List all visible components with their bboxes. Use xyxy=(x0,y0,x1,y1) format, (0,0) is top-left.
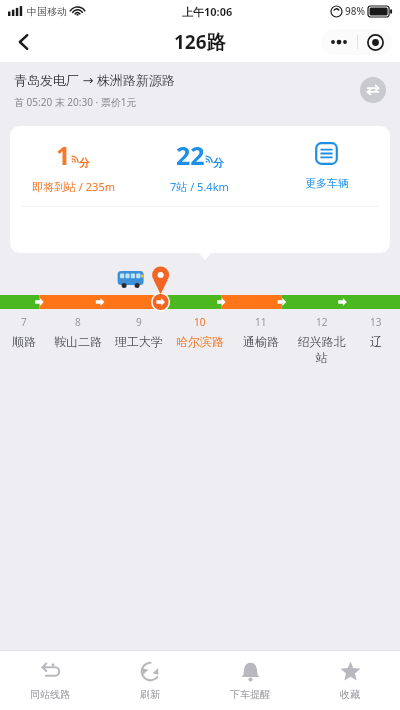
staticText: 中国移动 xyxy=(27,5,67,18)
staticText: 13 xyxy=(370,315,382,329)
staticText: 7 xyxy=(21,315,27,329)
button[interactable]: 刷新 xyxy=(100,651,200,710)
staticText: 22 xyxy=(176,138,205,172)
staticText: 9 xyxy=(136,315,142,329)
staticText: 更多车辆 xyxy=(305,176,349,190)
staticText: 12 xyxy=(316,315,328,329)
staticText: 1 xyxy=(56,138,71,172)
staticText: 同站线路 xyxy=(30,688,70,701)
staticText: 绍兴路北站 xyxy=(293,334,350,366)
staticText: 分 xyxy=(79,156,90,170)
staticText: 126路 xyxy=(174,29,226,55)
button[interactable]: 9 xyxy=(108,315,169,349)
button[interactable]: 下车提醒 xyxy=(200,651,300,710)
staticText: 11 xyxy=(255,315,267,329)
staticText: 10 xyxy=(194,315,206,329)
button[interactable]: 8 xyxy=(47,315,108,349)
button[interactable]: 更多车辆 xyxy=(263,142,390,190)
staticText: 顺路 xyxy=(12,334,36,349)
button[interactable]: 10 xyxy=(169,315,230,349)
button[interactable]: Reverse direction xyxy=(360,77,386,103)
staticText: 辽 xyxy=(370,334,382,349)
staticText: 通榆路 xyxy=(243,334,279,349)
staticText: 7站 / 5.4km xyxy=(170,179,229,194)
button[interactable]: Back xyxy=(6,24,42,60)
button[interactable]: More options xyxy=(321,29,357,55)
staticText: 理工大学 xyxy=(115,334,163,349)
button[interactable]: Locate xyxy=(358,29,392,55)
staticText: 分 xyxy=(213,156,224,170)
button[interactable]: 11 xyxy=(230,315,291,349)
button[interactable]: 1 xyxy=(10,138,136,194)
staticText: 收藏 xyxy=(340,688,360,701)
staticText: 8 xyxy=(75,315,81,329)
staticText: 刷新 xyxy=(140,688,160,701)
staticText: 青岛发电厂 → 株洲路新源路 xyxy=(14,71,175,89)
staticText: 鞍山二路 xyxy=(54,334,102,349)
staticText: 首 05:20 末 20:30 · 票价1元 xyxy=(14,95,137,109)
staticText: 即将到站 / 235m xyxy=(32,179,115,194)
button[interactable]: 同站线路 xyxy=(0,651,100,710)
button[interactable]: 12 xyxy=(291,315,352,366)
staticText: 上午10:06 xyxy=(182,4,233,19)
staticText: 下车提醒 xyxy=(230,688,270,701)
button[interactable]: 7 xyxy=(0,315,47,349)
staticText: 哈尔滨路 xyxy=(176,334,224,349)
staticText: 98% xyxy=(345,4,365,18)
button[interactable]: 收藏 xyxy=(300,651,400,710)
button[interactable]: 22 xyxy=(136,138,263,194)
button[interactable]: 13 xyxy=(352,315,400,349)
